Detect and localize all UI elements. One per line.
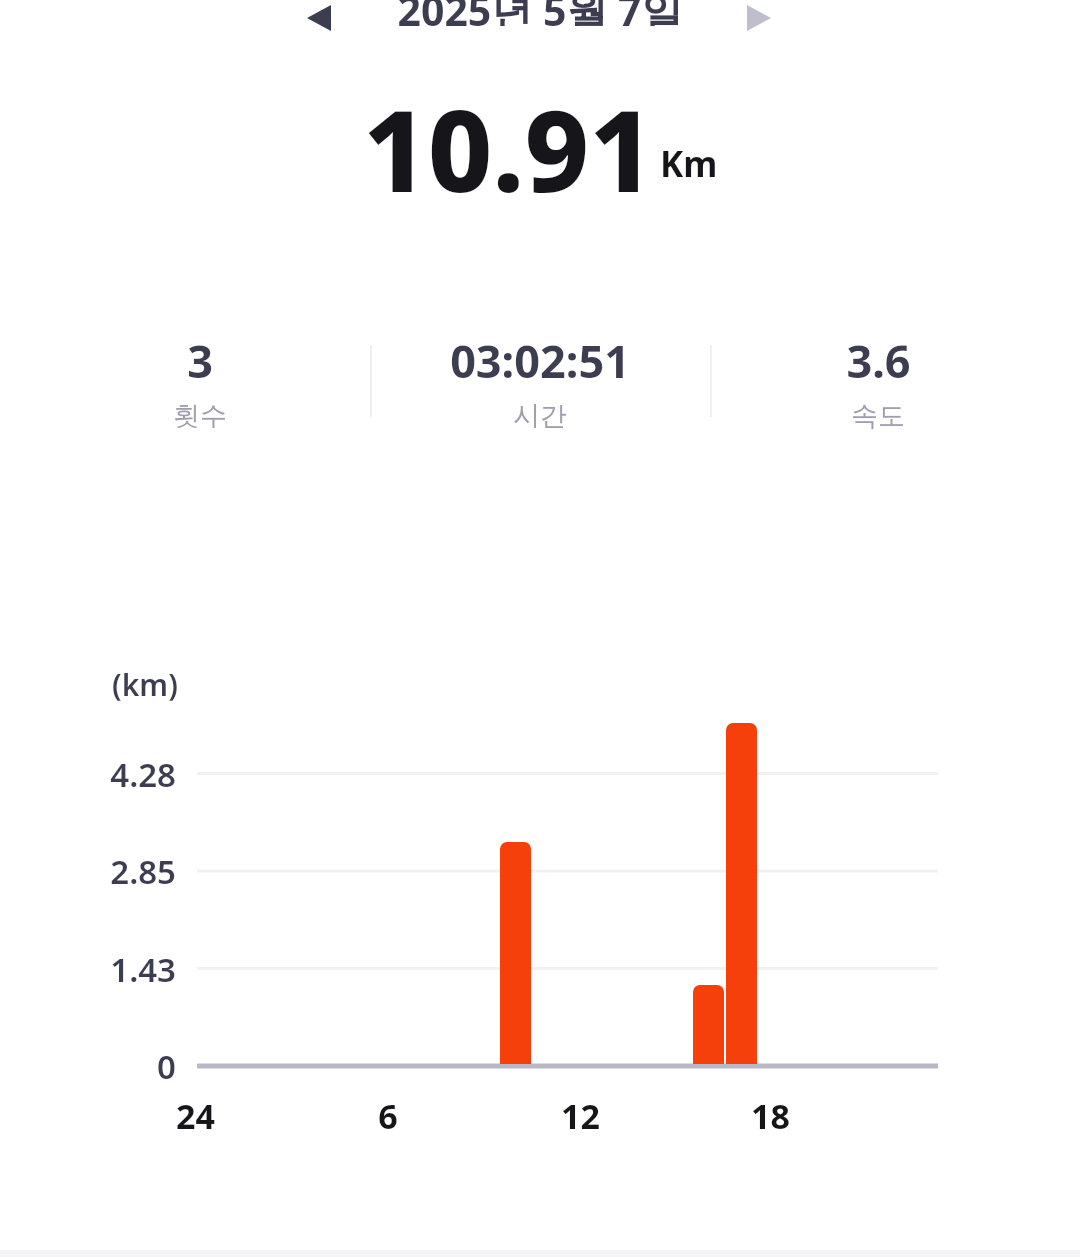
staticText: 2.85 xyxy=(110,849,176,894)
staticText: 1.43 xyxy=(110,947,176,992)
staticText: 3.6 xyxy=(846,330,911,391)
button[interactable]: 3 xyxy=(35,330,365,433)
button[interactable]: 03:02:51 xyxy=(375,330,705,433)
staticText: 횟수 xyxy=(173,399,227,433)
staticText: 10.91 xyxy=(363,72,654,202)
staticText: 18 xyxy=(751,1093,790,1139)
button[interactable]: Previous day xyxy=(294,0,344,40)
button[interactable]: 3.6 xyxy=(713,330,1043,433)
staticText: (km) xyxy=(112,664,178,705)
staticText: 4.28 xyxy=(110,752,176,797)
button[interactable]: Next day xyxy=(734,0,784,40)
staticText: 6 xyxy=(378,1093,398,1139)
staticText: 03:02:51 xyxy=(450,330,630,391)
staticText: Km xyxy=(660,140,718,188)
staticText: 12 xyxy=(561,1093,600,1139)
staticText: 3 xyxy=(187,330,213,391)
staticText: 24 xyxy=(176,1093,215,1139)
staticText: 속도 xyxy=(851,399,905,433)
staticText: 0 xyxy=(157,1044,176,1089)
staticText: 2025년 5월 7일 xyxy=(0,0,1080,26)
staticText: 시간 xyxy=(513,399,567,433)
